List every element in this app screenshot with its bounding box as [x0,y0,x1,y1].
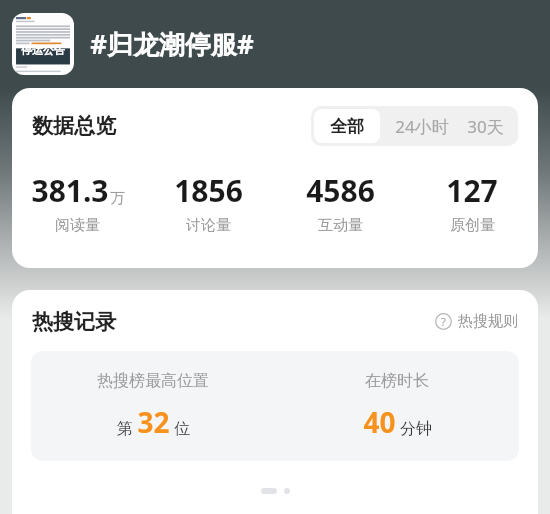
staticText: 热搜规则 [458,312,518,331]
staticText: 40 [363,403,396,441]
button[interactable]: 热搜榜最高位置 [31,351,275,461]
staticText: 数据总览 [32,113,116,139]
staticText: 位 [174,419,190,439]
staticText: ? [441,314,446,329]
staticText: 全部 [330,116,364,137]
staticText: 24小时 [395,115,449,138]
staticText: 381.3 [31,170,109,211]
staticText: 原创量 [450,216,495,235]
staticText: 阅读量 [55,216,100,235]
button[interactable]: Hot search rules help [433,308,520,335]
staticText: 30天 [467,115,504,138]
staticText: 分钟 [400,419,432,439]
button[interactable]: 127 [406,170,538,235]
staticText: 万 [110,189,125,208]
button[interactable]: 在榜时长 [275,351,519,461]
staticText: 127 [446,170,498,211]
staticText: 热搜记录 [32,309,116,335]
staticText: 第 [117,419,133,439]
button[interactable]: 381.3 [12,170,143,235]
staticText: 4586 [306,170,375,211]
other: Hot search rules help [435,313,452,330]
button[interactable]: 30天 [461,106,518,146]
button[interactable]: 全部 [314,109,380,143]
button[interactable]: 4586 [274,170,406,235]
staticText: #归龙潮停服# [90,26,254,62]
button[interactable]: 24小时 [383,106,461,146]
staticText: 停运公告 [21,43,65,57]
button[interactable]: 1856 [143,170,274,235]
staticText: 1856 [174,170,243,211]
staticText: 热搜榜最高位置 [97,371,209,391]
staticText: 32 [137,403,170,441]
staticText: 讨论量 [186,216,231,235]
staticText: 互动量 [318,216,363,235]
staticText: 在榜时长 [365,371,429,391]
button[interactable]: Post thumbnail [12,13,74,75]
